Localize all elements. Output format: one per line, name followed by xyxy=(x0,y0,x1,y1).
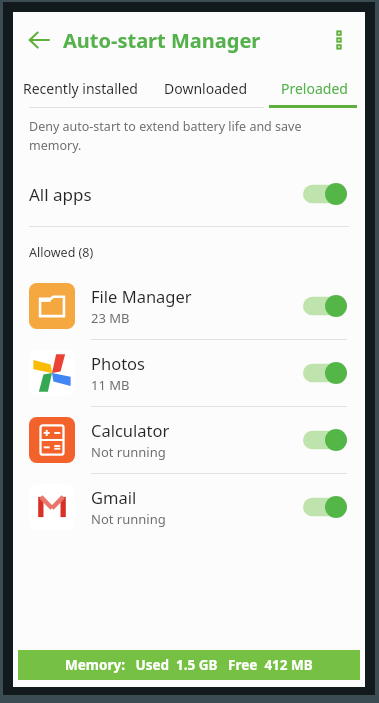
staticText: Downloaded xyxy=(164,79,248,98)
button[interactable]: Recently installed xyxy=(13,68,148,108)
button[interactable]: Photos xyxy=(13,340,365,406)
staticText: Recently installed xyxy=(23,79,138,98)
staticText: Allowed (8) xyxy=(29,244,94,261)
staticText: Calculator xyxy=(91,419,170,441)
button[interactable]: File Manager xyxy=(13,273,365,339)
button[interactable]: Memory: Used 1.5 GB Free 412 MB xyxy=(18,650,360,680)
staticText: Photos xyxy=(91,352,146,374)
staticText: Memory: Used 1.5 GB Free 412 MB xyxy=(65,656,313,674)
staticText: Deny auto-start to extend battery life a… xyxy=(29,118,302,154)
button[interactable]: Toggle auto-start xyxy=(303,496,347,518)
button[interactable]: Preloaded xyxy=(263,68,365,108)
button[interactable]: Toggle auto-start xyxy=(303,183,347,205)
staticText: Not running xyxy=(91,510,166,528)
button[interactable]: Calculator xyxy=(13,407,365,473)
staticText: 23 MB xyxy=(91,309,130,327)
button[interactable]: Toggle auto-start xyxy=(303,295,347,317)
staticText: Gmail xyxy=(91,486,137,508)
staticText: File Manager xyxy=(91,285,192,307)
button[interactable]: More options xyxy=(319,20,359,60)
button[interactable]: Gmail xyxy=(13,474,365,540)
staticText: All apps xyxy=(29,183,92,206)
staticText: Preloaded xyxy=(281,79,348,98)
button[interactable]: Toggle auto-start xyxy=(303,429,347,451)
button[interactable]: All apps xyxy=(13,176,365,212)
button[interactable]: Downloaded xyxy=(148,68,263,108)
staticText: Not running xyxy=(91,443,166,461)
button[interactable]: Toggle auto-start xyxy=(303,362,347,384)
button[interactable]: Back xyxy=(19,20,59,60)
staticText: 11 MB xyxy=(91,376,130,394)
staticText: Auto-start Manager xyxy=(63,27,261,54)
